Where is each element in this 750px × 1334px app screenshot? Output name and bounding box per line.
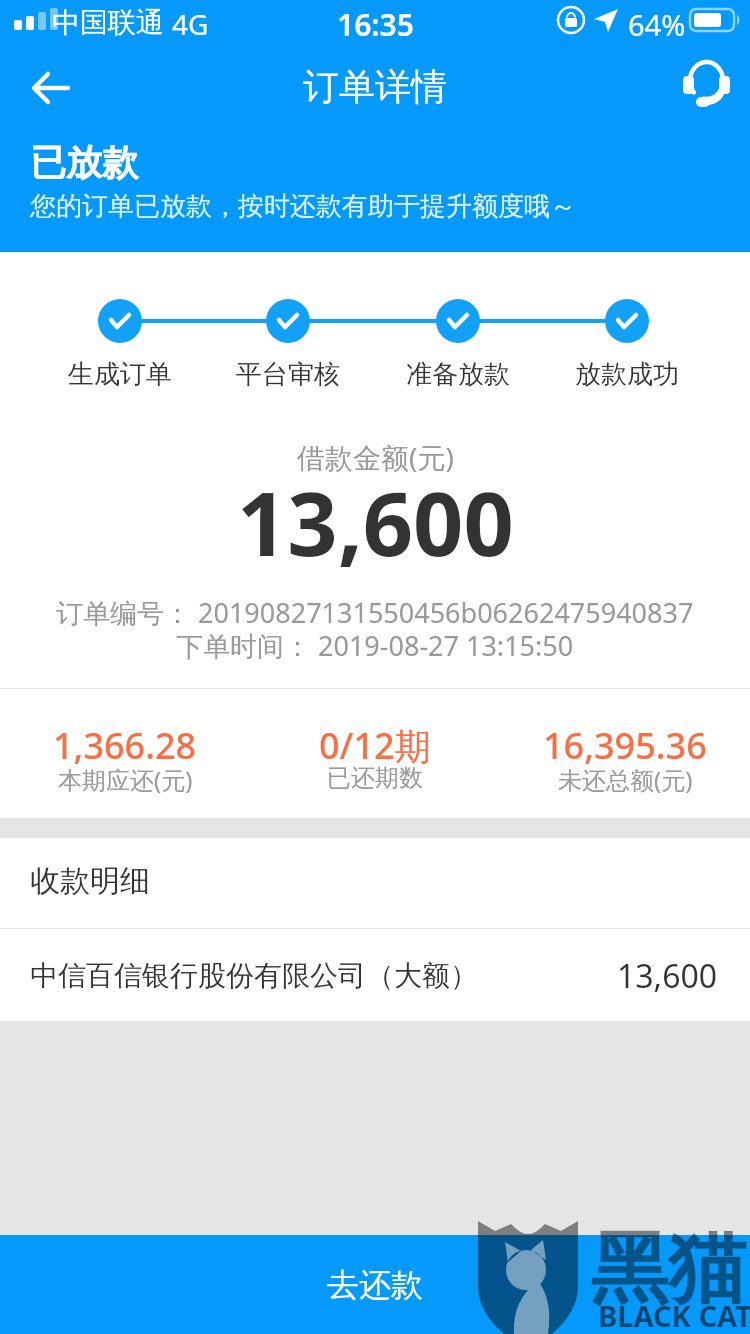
button[interactable]: 16,395.36	[500, 721, 750, 770]
button[interactable]: 中信百信银行股份有限公司（大额）	[0, 930, 750, 1021]
staticText: 16,395.36	[543, 721, 707, 770]
staticText: 去还款	[327, 1265, 423, 1305]
staticText: 13,600	[237, 462, 514, 582]
staticText: 平台审核	[236, 358, 340, 391]
staticText: 本期应还(元)	[58, 763, 193, 796]
staticText: 中信百信银行股份有限公司（大额）	[30, 958, 478, 993]
staticText: 0/12期	[319, 721, 431, 770]
staticText: 收款明细	[30, 862, 150, 900]
staticText: 生成订单	[68, 358, 172, 391]
button[interactable]	[18, 60, 82, 116]
staticText: 中国联通	[52, 5, 164, 40]
staticText: 4G	[172, 5, 209, 43]
staticText: 借款金额(元)	[297, 438, 454, 476]
staticText: 您的订单已放款，按时还款有助于提升额度哦～	[30, 190, 576, 223]
staticText: 13,600	[617, 954, 718, 998]
staticText: 订单编号： 20190827131550456b06262475940837	[56, 594, 694, 631]
staticText: 64%	[628, 5, 686, 44]
staticText: 放款成功	[575, 358, 679, 391]
staticText: 未还总额(元)	[558, 763, 693, 796]
button[interactable]: 去还款	[0, 1235, 750, 1334]
button[interactable]: 0/12期	[250, 721, 500, 770]
button[interactable]: 1,366.28	[0, 721, 250, 770]
staticText: 黑猫	[590, 1220, 746, 1318]
staticText: 16:35	[337, 4, 414, 45]
staticText: 已放款	[30, 140, 138, 185]
staticText: 1,366.28	[53, 721, 197, 770]
button[interactable]	[682, 56, 734, 112]
staticText: 订单详情	[303, 64, 447, 109]
staticText: 准备放款	[406, 358, 510, 391]
staticText: 下单时间： 2019-08-27 13:15:50	[176, 627, 574, 664]
staticText: BLACK CAT	[598, 1296, 750, 1334]
staticText: 已还期数	[327, 763, 423, 793]
